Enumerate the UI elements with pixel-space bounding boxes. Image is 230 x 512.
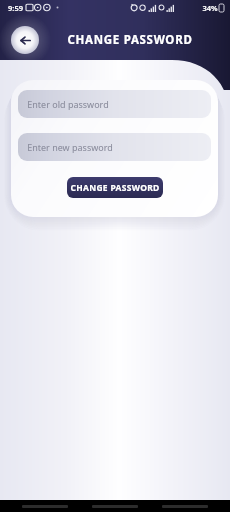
staticText: Enter old password [27,98,109,110]
button[interactable]: CHANGE PASSWORD [67,177,163,198]
staticText: CHANGE PASSWORD [67,32,193,48]
button[interactable]: Enter old password [18,90,211,118]
staticText: Enter new password [27,141,113,153]
staticText: CHANGE PASSWORD [70,182,160,194]
staticText: 34% [202,3,218,13]
button[interactable]: Back [11,26,39,54]
staticText: 9:59 [8,3,23,13]
button[interactable]: Enter new password [18,133,211,161]
